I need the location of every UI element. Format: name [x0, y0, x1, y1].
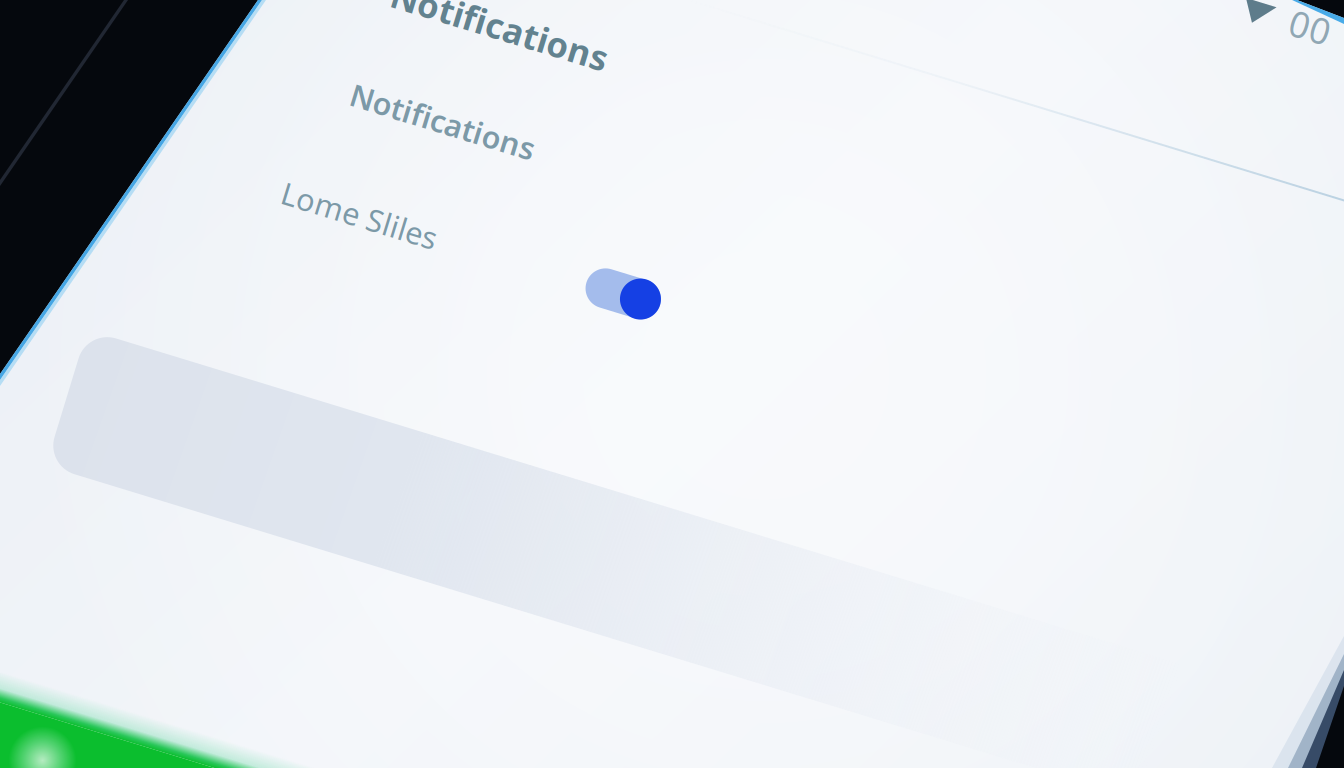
- button[interactable]: Notifications: [290, 69, 515, 115]
- staticText: Notifications: [280, 180, 472, 220]
- staticText: Notifications: [290, 69, 515, 115]
- button[interactable]: Notifications: [280, 180, 472, 220]
- button[interactable]: Lome Sliles toggle: [560, 291, 637, 332]
